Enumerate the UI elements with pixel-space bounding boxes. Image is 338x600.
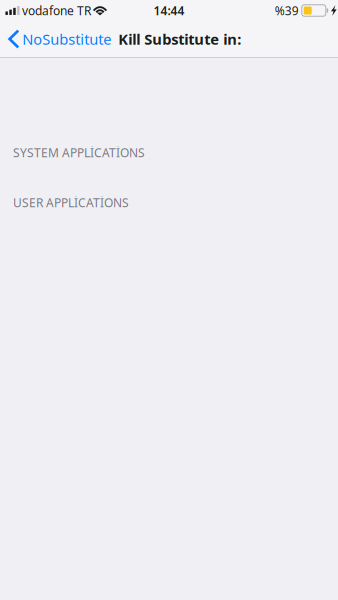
button[interactable]: Back to NoSubstitute (0, 21, 115, 57)
staticText: USER APPLİCATİONS (13, 195, 129, 211)
staticText: %39 (275, 2, 299, 18)
staticText: 14:44 (153, 2, 184, 18)
staticText: Kill Substitute in: (118, 29, 241, 49)
staticText: NoSubstitute (22, 29, 111, 49)
staticText: SYSTEM APPLİCATİONS (13, 145, 145, 161)
staticText: vodafone TR (22, 2, 91, 18)
